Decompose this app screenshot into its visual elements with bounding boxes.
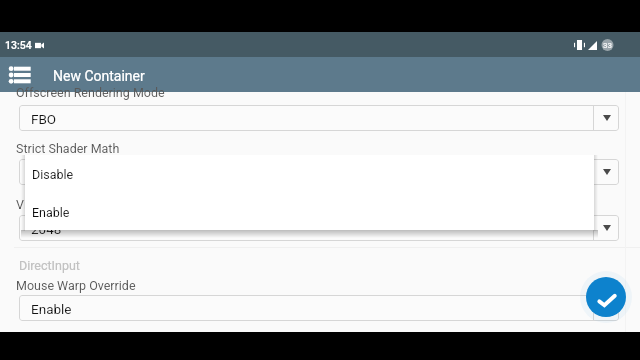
button[interactable]: FBO — [19, 105, 619, 131]
staticText: 13:54 — [5, 39, 32, 51]
button[interactable]: Disable — [19, 159, 619, 185]
button[interactable]: Enable — [25, 192, 594, 230]
staticText: 33 — [603, 41, 612, 50]
staticText: FBO — [31, 111, 57, 127]
button[interactable]: Enable — [19, 295, 619, 321]
staticText: New Container — [53, 68, 145, 84]
button[interactable]: 2048 — [19, 215, 619, 241]
staticText: DirectInput — [19, 258, 80, 273]
staticText: Enable — [32, 205, 70, 220]
staticText: Enable — [31, 301, 72, 317]
staticText: Disable — [32, 167, 74, 182]
button[interactable]: Confirm — [586, 277, 626, 317]
staticText: Video Memory Size — [16, 197, 124, 212]
staticText: Offscreen Rendering Mode — [16, 85, 165, 100]
staticText: 2048 — [31, 221, 62, 237]
button[interactable]: Menu — [4, 61, 35, 88]
staticText: Mouse Warp Override — [16, 278, 136, 293]
button[interactable]: Disable — [25, 155, 594, 192]
staticText: Strict Shader Math — [16, 141, 120, 156]
staticText: Disable — [31, 165, 76, 181]
